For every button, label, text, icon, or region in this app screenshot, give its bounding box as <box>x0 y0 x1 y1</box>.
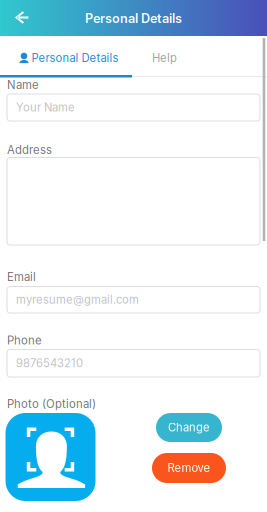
staticText: Personal Details <box>32 51 119 65</box>
staticText: Personal Details <box>85 11 182 26</box>
button[interactable]: Back <box>4 0 42 34</box>
staticText: Change <box>168 421 210 434</box>
staticText: Phone <box>7 333 42 347</box>
staticText: 9876543210 <box>16 356 83 370</box>
button[interactable]: Photo <box>5 413 95 501</box>
staticText: Your Name <box>16 101 75 114</box>
staticText: Name <box>7 78 39 92</box>
button[interactable]: Help <box>133 39 196 76</box>
staticText: Help <box>152 51 177 65</box>
button[interactable]: Remove <box>152 453 226 483</box>
button[interactable]: Change <box>156 413 222 442</box>
button[interactable]: Personal Details <box>0 39 133 76</box>
staticText: myresume@gmail.com <box>16 293 139 307</box>
staticText: Remove <box>167 461 210 475</box>
staticText: Email <box>7 270 36 284</box>
staticText: Photo (Optional) <box>7 397 96 411</box>
staticText: Address <box>7 143 52 157</box>
